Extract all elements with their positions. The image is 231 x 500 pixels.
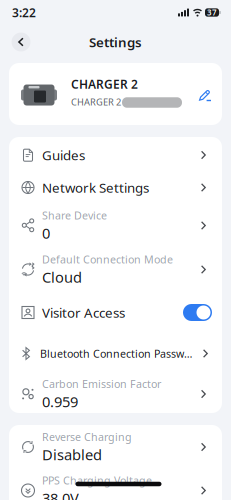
staticText: CHARGER 2: [71, 96, 121, 108]
staticText: Visitor Access: [42, 304, 125, 321]
staticText: Settings: [89, 33, 142, 51]
button[interactable]: Edit device name: [199, 88, 212, 101]
staticText: PPS Charging Voltage: [42, 473, 152, 487]
staticText: Share Device: [42, 208, 107, 222]
button[interactable]: PPS Charging Voltage: [9, 466, 222, 500]
staticText: CHARGER 2: [71, 76, 138, 92]
staticText: Carbon Emission Factor: [42, 377, 161, 391]
staticText: Reverse Charging: [42, 430, 132, 444]
staticText: 3:22: [12, 4, 36, 20]
staticText: Disabled: [42, 445, 102, 464]
button[interactable]: Network Settings: [9, 173, 222, 202]
button[interactable]: Guides: [9, 137, 222, 173]
staticText: 0: [42, 223, 50, 243]
button[interactable]: Carbon Emission Factor: [9, 371, 222, 413]
staticText: Bluetooth Connection Passwo...: [40, 346, 195, 361]
staticText: 0.959: [42, 392, 78, 411]
button[interactable]: Visitor Access: [9, 289, 222, 336]
staticText: Network Settings: [42, 179, 149, 196]
staticText: Default Connection Mode: [42, 252, 173, 266]
button[interactable]: Reverse Charging: [9, 425, 222, 466]
button[interactable]: Share Device: [9, 202, 222, 244]
staticText: 37: [207, 7, 217, 18]
button[interactable]: Default Connection Mode: [9, 244, 222, 289]
button[interactable]: Back: [11, 32, 30, 51]
staticText: Guides: [42, 146, 85, 164]
staticText: Cloud: [42, 267, 82, 287]
staticText: 38.0V: [42, 488, 79, 500]
button[interactable]: Bluetooth Connection Passwo...: [9, 336, 222, 371]
